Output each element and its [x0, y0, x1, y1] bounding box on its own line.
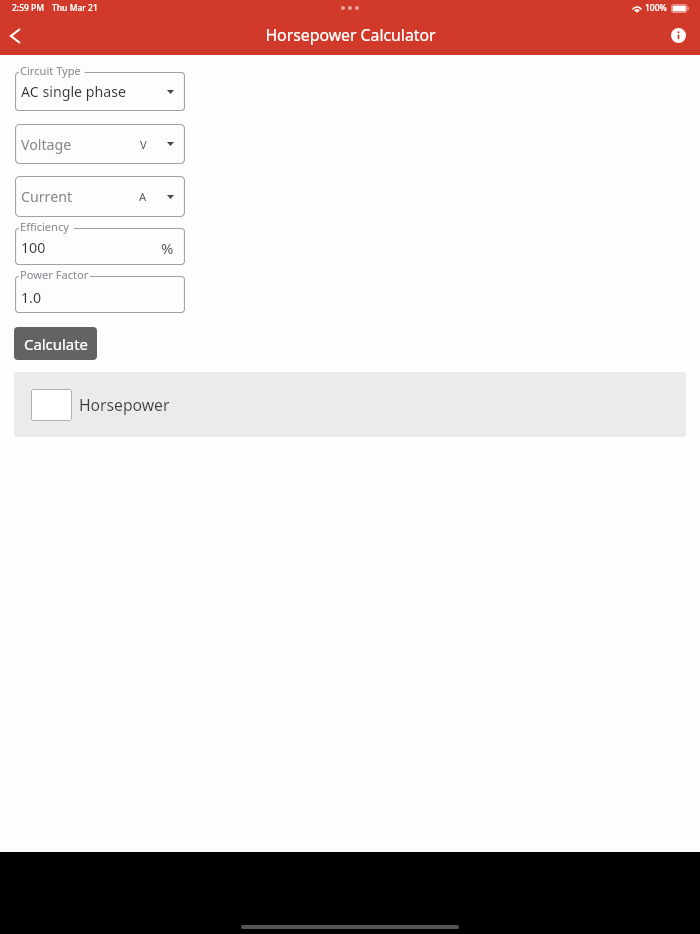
button[interactable]: Info: [656, 16, 700, 55]
button[interactable]: Back: [0, 21, 30, 51]
button[interactable]: Calculate: [14, 327, 97, 360]
staticText: Calculate: [24, 334, 88, 354]
staticText: Current: [21, 187, 73, 206]
button[interactable]: Current: [15, 176, 185, 217]
staticText: 1.0: [21, 288, 42, 307]
button[interactable]: Efficiency: [15, 228, 185, 265]
staticText: AC single phase: [21, 82, 126, 101]
button[interactable]: Power Factor: [15, 276, 185, 313]
staticText: Power Factor: [20, 267, 89, 282]
staticText: Thu Mar 21: [52, 2, 98, 14]
button[interactable]: Horsepower: [14, 372, 686, 437]
button[interactable]: Voltage: [15, 124, 185, 164]
staticText: Circuit Type: [20, 63, 81, 78]
staticText: A: [139, 189, 147, 204]
staticText: Horsepower: [79, 394, 170, 415]
button[interactable]: Circuit Type: [15, 72, 185, 111]
staticText: %: [161, 238, 174, 258]
staticText: 100: [21, 238, 46, 257]
staticText: Efficiency: [20, 219, 69, 234]
staticText: 100%: [645, 2, 667, 14]
staticText: 2:59 PM: [12, 2, 45, 14]
staticText: Voltage: [21, 135, 72, 154]
staticText: Horsepower Calculator: [265, 24, 436, 46]
staticText: V: [140, 137, 147, 152]
